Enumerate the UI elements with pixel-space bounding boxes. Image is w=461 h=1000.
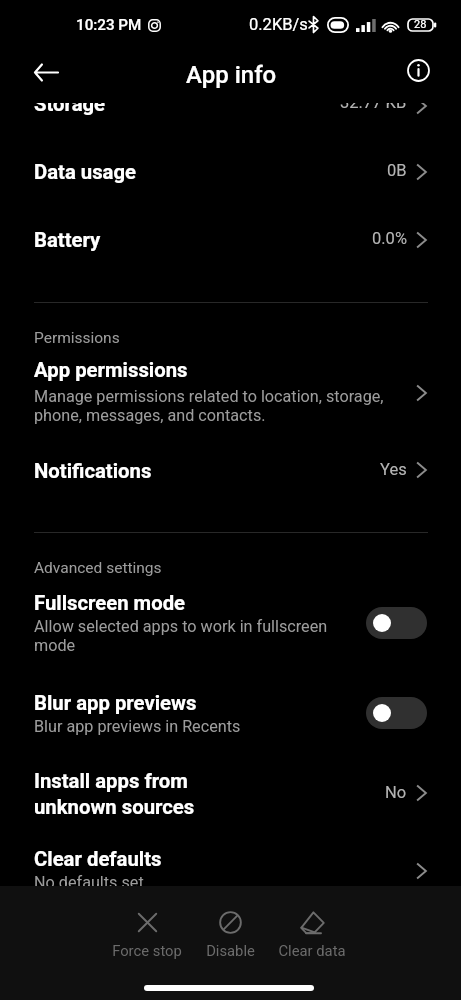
staticText: Clear defaults xyxy=(34,847,162,871)
button[interactable]: Battery xyxy=(0,224,461,256)
button[interactable]: Storage xyxy=(0,88,461,120)
button[interactable]: Toggle xyxy=(366,607,427,639)
button[interactable]: App details xyxy=(401,53,436,88)
staticText: Disable xyxy=(206,942,255,959)
staticText: Advanced settings xyxy=(34,559,162,577)
staticText: 28 xyxy=(414,18,427,31)
button[interactable]: Blur app previews xyxy=(0,687,461,739)
button[interactable]: Toggle xyxy=(366,697,427,729)
staticText: Permissions xyxy=(34,329,120,347)
staticText: Install apps from unknown sources xyxy=(34,769,195,819)
staticText: Storage xyxy=(34,92,106,116)
staticText: Manage permissions related to location, … xyxy=(34,387,384,425)
staticText: Notifications xyxy=(34,459,152,483)
button[interactable]: Fullscreen mode xyxy=(0,587,461,657)
staticText: Blur app previews xyxy=(34,691,197,715)
button[interactable]: App permissions xyxy=(0,357,461,427)
staticText: App permissions xyxy=(34,358,188,382)
staticText: Battery xyxy=(34,228,101,252)
staticText: Blur app previews in Recents xyxy=(34,717,241,736)
staticText: Yes xyxy=(380,460,407,479)
button[interactable]: Disable xyxy=(185,911,275,959)
staticText: 32.77 KB xyxy=(340,93,407,112)
button[interactable]: Data usage xyxy=(0,156,461,188)
staticText: Data usage xyxy=(34,160,137,184)
button[interactable]: Clear data xyxy=(267,911,357,959)
staticText: Allow selected apps to work in fullscree… xyxy=(34,617,328,655)
staticText: Clear data xyxy=(278,942,346,959)
staticText: Fullscreen mode xyxy=(34,591,186,615)
button[interactable]: Notifications xyxy=(0,455,461,487)
staticText: 10:23 PM xyxy=(76,16,142,34)
staticText: 0.0% xyxy=(372,229,407,248)
staticText: App info xyxy=(186,61,277,89)
staticText: No defaults set xyxy=(34,873,144,892)
button[interactable]: Clear defaults xyxy=(0,843,461,888)
staticText: 0B xyxy=(387,161,407,180)
button[interactable]: Install apps from unknown sources xyxy=(0,765,461,821)
button[interactable]: Back xyxy=(28,54,64,90)
staticText: No xyxy=(385,783,407,802)
staticText: Force stop xyxy=(112,942,182,959)
staticText: 0.2KB/s xyxy=(249,15,308,34)
button[interactable]: Force stop xyxy=(102,911,192,959)
